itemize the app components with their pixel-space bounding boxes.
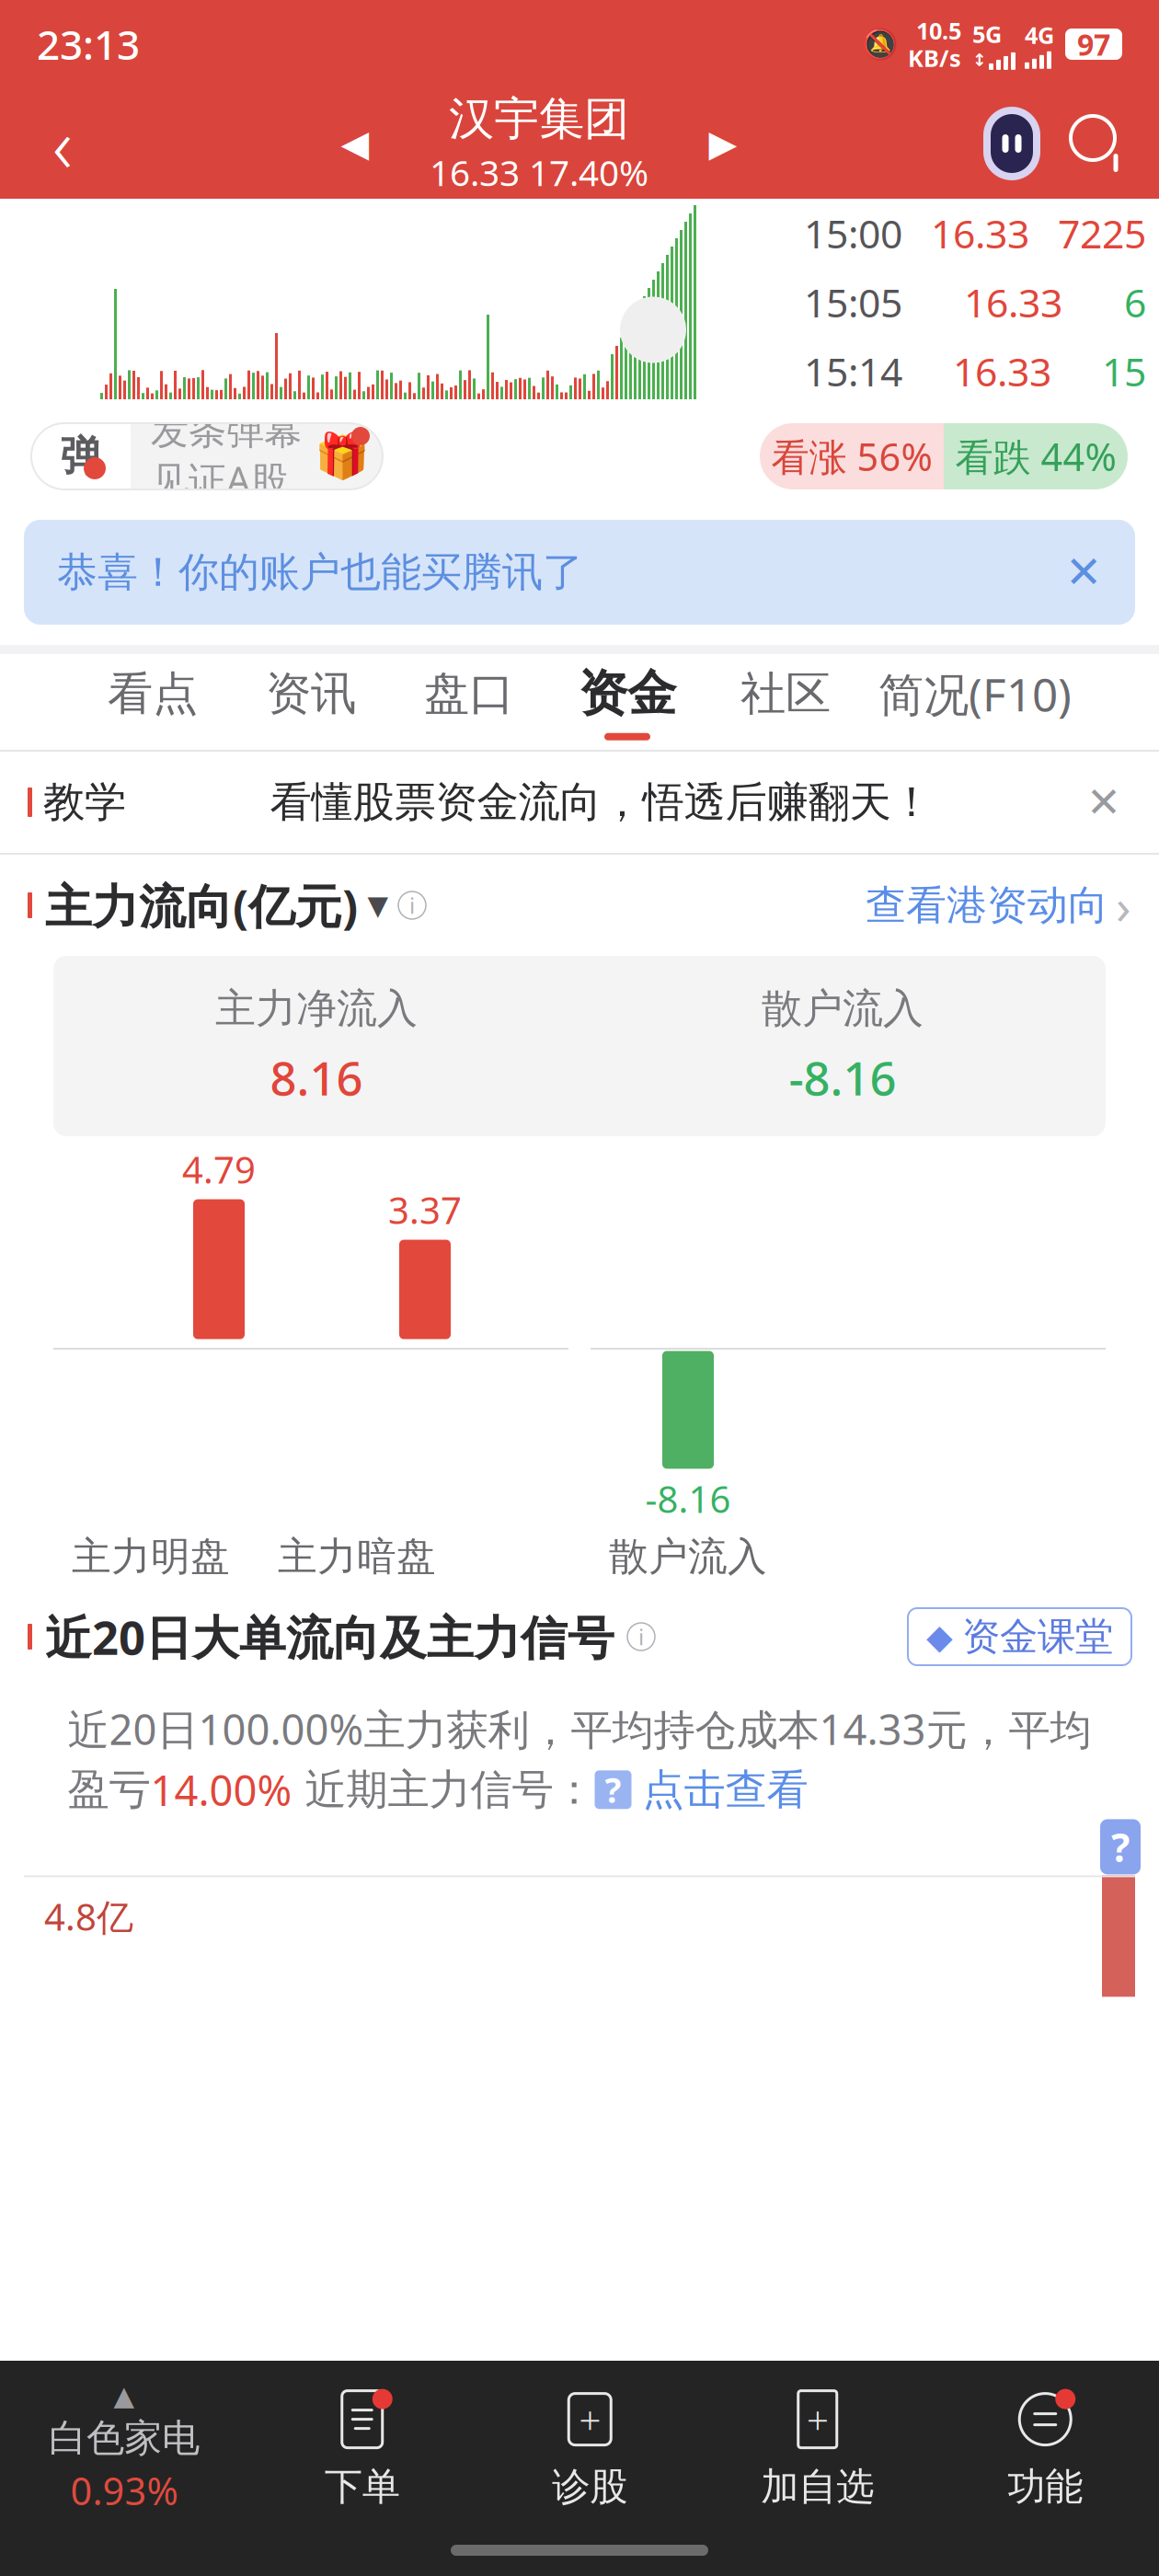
button[interactable]: Next stock xyxy=(691,93,755,194)
button[interactable]: 资金 xyxy=(548,654,706,750)
staticText: ? xyxy=(605,1767,621,1812)
staticText: 查看港资动向 xyxy=(866,880,1108,930)
staticText: ◆ xyxy=(926,1617,953,1656)
staticText: 资金 xyxy=(579,664,676,724)
staticText: 4G xyxy=(1025,20,1054,50)
button[interactable]: 点击查看 xyxy=(631,1764,808,1815)
staticText: -8.16 xyxy=(789,1046,896,1108)
button[interactable]: 查看港资动向 xyxy=(866,873,1131,938)
button[interactable]: 恭喜！你的账户也能买腾讯了 xyxy=(24,520,1135,625)
staticText: ◀ xyxy=(341,123,369,164)
staticText: 3.37 xyxy=(388,1185,462,1234)
staticText: 看点 xyxy=(108,666,198,722)
staticText: 主力明盘 xyxy=(72,1533,230,1581)
staticText: 16.33 17.40% xyxy=(430,149,648,196)
staticText: ✕ xyxy=(1086,779,1121,826)
staticText: 诊股 xyxy=(552,2463,628,2510)
staticText: 简况(F10) xyxy=(878,664,1072,724)
staticText: 7225 xyxy=(1058,207,1146,259)
button[interactable]: 盘口 xyxy=(390,654,548,750)
button[interactable]: Previous stock xyxy=(323,93,387,194)
staticText: 6 xyxy=(1124,276,1146,328)
button[interactable]: Back xyxy=(17,93,109,194)
staticText: ‹ xyxy=(52,93,73,194)
staticText: 近20日大单流向及主力信号 xyxy=(45,1606,614,1668)
staticText: 资金课堂 xyxy=(962,1613,1113,1660)
staticText: 16.33 xyxy=(931,207,1029,259)
button[interactable]: 社区 xyxy=(706,654,865,750)
staticText: ▼ xyxy=(367,890,389,921)
staticText: 点击查看 xyxy=(643,1764,808,1815)
staticText: 16.33 xyxy=(953,345,1051,397)
staticText: ↕ xyxy=(972,50,987,70)
staticText: -8.16 xyxy=(645,1474,731,1523)
staticText: 看懂股票资金流向，悟透后赚翻天！ xyxy=(270,777,932,828)
staticText: 汉宇集团 xyxy=(449,91,629,147)
staticText: 恭喜！你的账户也能买腾讯了 xyxy=(57,547,583,597)
staticText: 主力流向(亿元) xyxy=(45,874,358,936)
button[interactable]: 看涨 56% xyxy=(760,423,1128,489)
button[interactable]: Change period xyxy=(358,885,398,926)
button[interactable]: 简况(F10) xyxy=(865,654,1085,750)
staticText: i xyxy=(638,1622,644,1651)
staticText: 15 xyxy=(1102,345,1146,397)
staticText: 散户流入 xyxy=(609,1533,767,1581)
staticText: 🎁 xyxy=(315,431,370,482)
staticText: 社区 xyxy=(740,666,831,722)
button[interactable]: + xyxy=(476,2361,704,2536)
staticText: 8.16 xyxy=(270,1046,363,1108)
staticText: ▲ xyxy=(114,2380,135,2411)
button[interactable]: + xyxy=(704,2361,931,2536)
button[interactable]: 看点 xyxy=(74,654,232,750)
button[interactable]: ◆ xyxy=(908,1608,1131,1665)
staticText: ? xyxy=(1111,1821,1130,1873)
staticText: 16.33 xyxy=(964,276,1062,328)
staticText: 97 xyxy=(1077,25,1110,64)
button[interactable]: ▲ xyxy=(0,2361,248,2536)
staticText: 白色家电 xyxy=(49,2415,200,2462)
staticText: 功能 xyxy=(1007,2463,1083,2510)
staticText: + xyxy=(807,2393,829,2445)
staticText: 加自选 xyxy=(761,2463,874,2510)
staticText: 15:14 xyxy=(804,345,902,397)
staticText: ▶ xyxy=(709,123,737,164)
staticText: 🔕 xyxy=(862,27,899,61)
staticText: 资讯 xyxy=(266,666,356,722)
staticText: 盈亏 xyxy=(68,1764,150,1815)
staticText: 5G xyxy=(972,18,1002,49)
staticText: 4.79 xyxy=(182,1145,256,1194)
staticText: 看涨 56% xyxy=(771,431,932,482)
button[interactable]: 弹 xyxy=(31,423,383,489)
staticText: KB/s xyxy=(908,42,961,73)
staticText: › xyxy=(1116,873,1131,938)
staticText: 近期主力信号： xyxy=(292,1764,595,1815)
button[interactable]: AI assistant xyxy=(970,93,1054,194)
staticText: 14.00% xyxy=(150,1762,292,1817)
staticText: 下单 xyxy=(325,2463,400,2510)
staticText: 近20日100.00%主力获利，平均持仓成本14.33元，平均 xyxy=(68,1701,1091,1756)
button[interactable]: 功能 xyxy=(931,2361,1159,2536)
button[interactable]: 资讯 xyxy=(232,654,390,750)
button[interactable]: 下单 xyxy=(248,2361,476,2536)
staticText: 15:00 xyxy=(804,207,902,259)
staticText: 发条弹幕见证A股 xyxy=(151,408,302,505)
staticText: + xyxy=(579,2393,601,2445)
staticText: 0.93% xyxy=(70,2465,178,2516)
staticText: 4.8亿 xyxy=(44,1892,133,1941)
staticText: ✕ xyxy=(1065,547,1102,597)
staticText: 盘口 xyxy=(424,666,514,722)
button[interactable]: Search xyxy=(1054,93,1142,194)
staticText: 23:13 xyxy=(37,17,140,71)
staticText: 散户流入 xyxy=(762,984,924,1033)
staticText: i xyxy=(409,891,415,920)
staticText: 教学 xyxy=(43,777,126,828)
staticText: 10.5 xyxy=(916,15,961,46)
staticText: 主力净流入 xyxy=(215,984,418,1033)
staticText: 主力暗盘 xyxy=(278,1533,436,1581)
staticText: 弹 xyxy=(60,431,102,482)
staticText: 看跌 44% xyxy=(955,431,1116,482)
staticText: 15:05 xyxy=(804,276,902,328)
button[interactable]: Dismiss xyxy=(1076,775,1131,830)
